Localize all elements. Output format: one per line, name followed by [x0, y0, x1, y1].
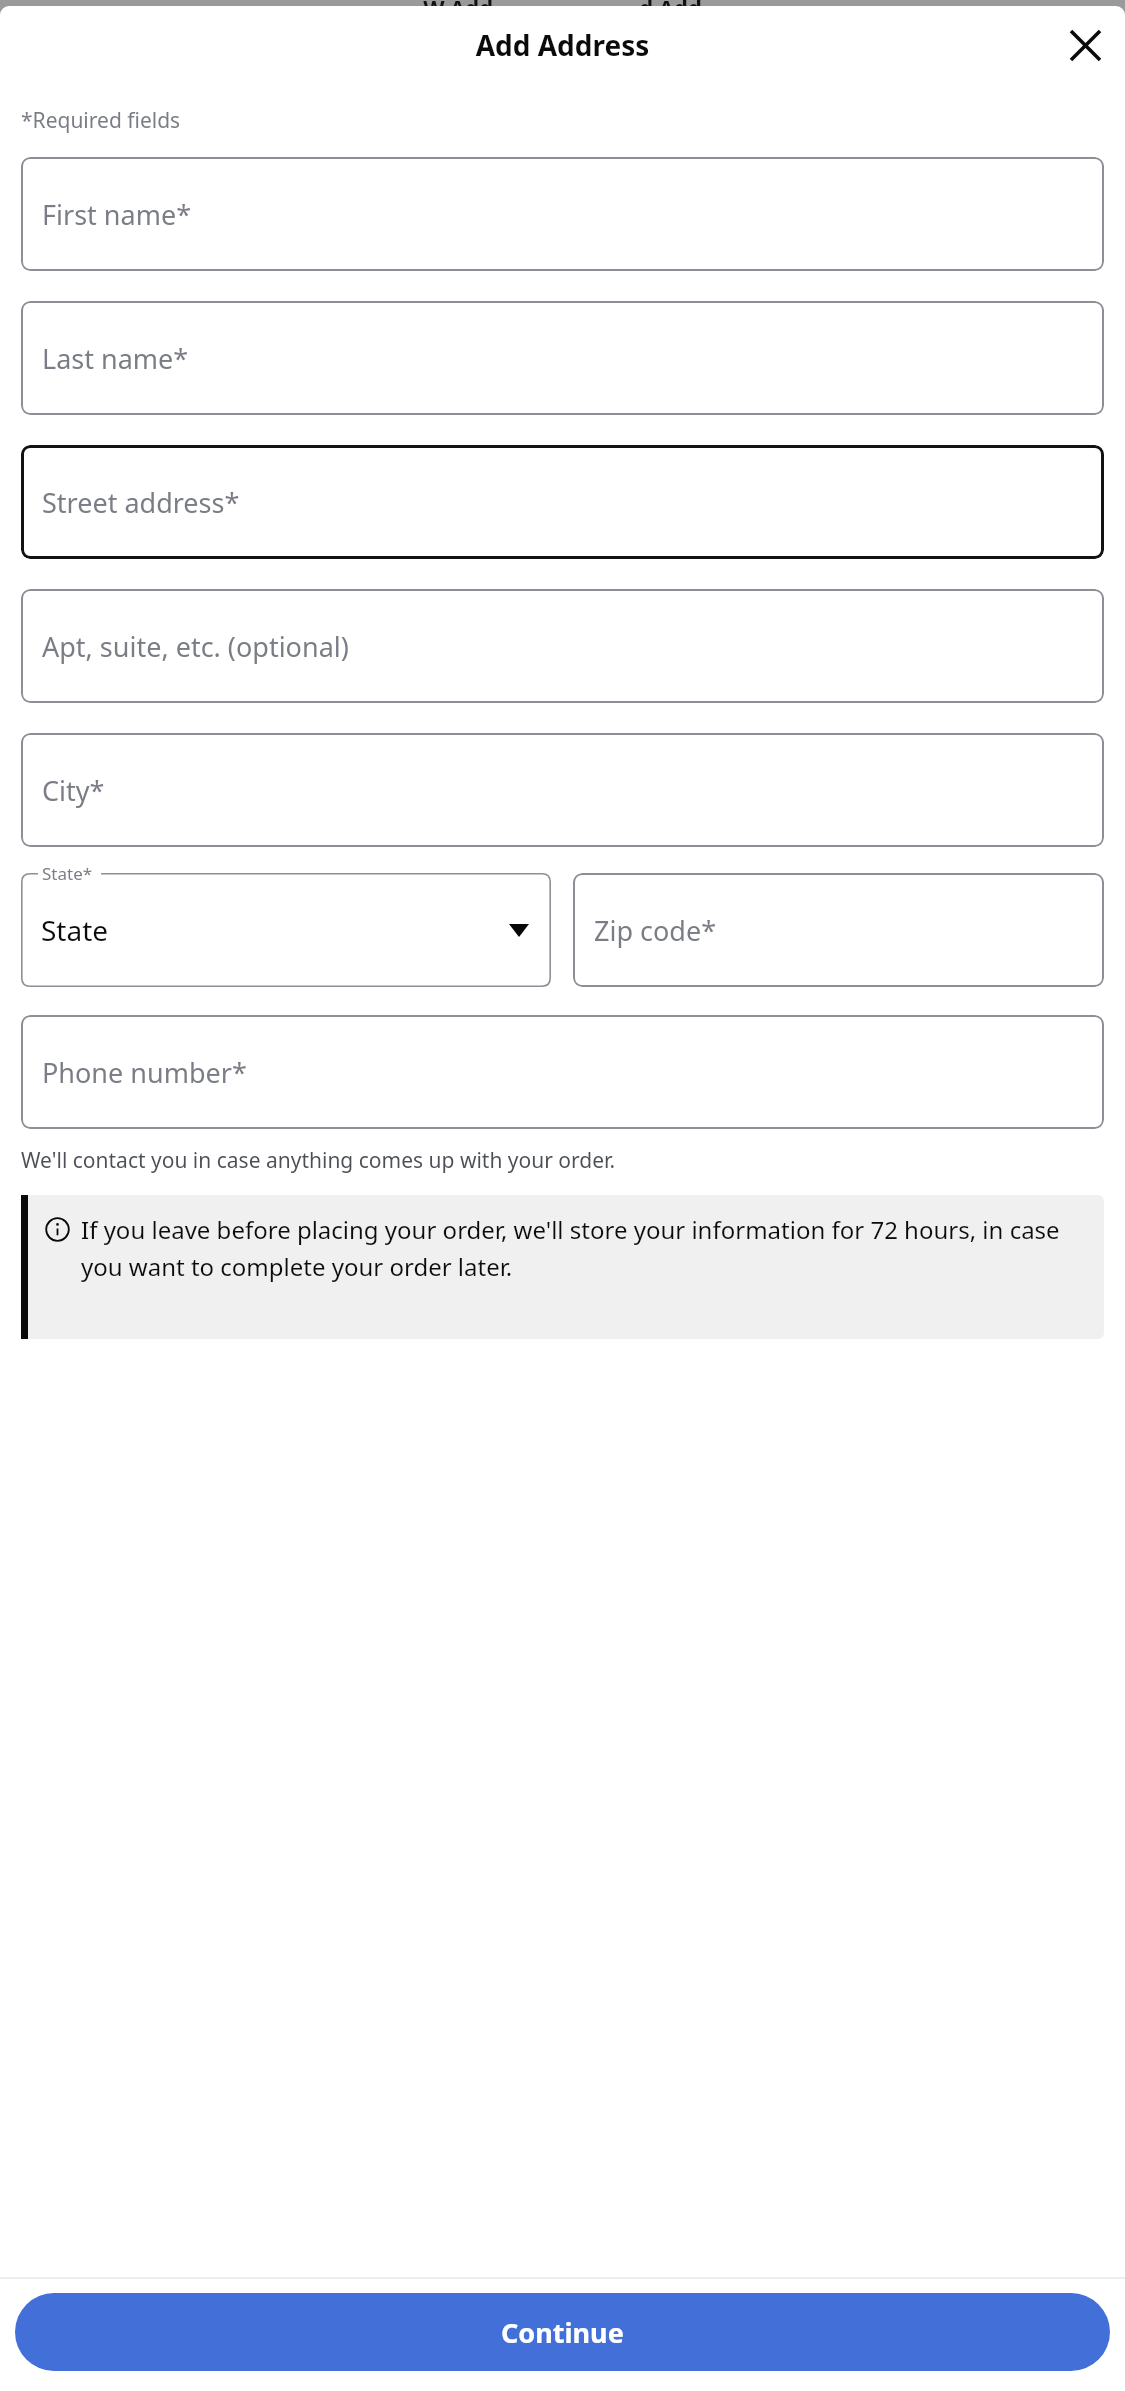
staticText: Continue: [501, 2314, 624, 2351]
button[interactable]: Last name*: [21, 301, 1104, 415]
staticText: Zip code*: [594, 912, 717, 949]
button[interactable]: Zip code*: [573, 873, 1104, 987]
button[interactable]: Close: [1059, 19, 1111, 71]
button[interactable]: Phone number*: [21, 1015, 1104, 1129]
button[interactable]: First name*: [21, 157, 1104, 271]
button[interactable]: Street address*: [21, 445, 1104, 559]
button[interactable]: State: [21, 873, 551, 987]
button[interactable]: City*: [21, 733, 1104, 847]
staticText: City*: [42, 772, 105, 809]
button[interactable]: Apt, suite, etc. (optional): [21, 589, 1104, 703]
staticText: State: [41, 911, 109, 949]
staticText: Phone number*: [42, 1054, 247, 1091]
staticText: State*: [42, 862, 93, 885]
staticText: Last name*: [42, 340, 189, 377]
staticText: W Add···· ···· ·· ··· ·· ····d Add: [0, 0, 1125, 22]
button[interactable]: Continue: [15, 2293, 1110, 2371]
staticText: *Required fields: [21, 106, 181, 135]
staticText: Street address*: [42, 484, 240, 521]
staticText: Apt, suite, etc. (optional): [42, 628, 349, 665]
staticText: We'll contact you in case anything comes…: [21, 1146, 616, 1175]
staticText: If you leave before placing your order, …: [81, 1213, 1086, 1283]
staticText: Add Address: [0, 26, 1125, 64]
staticText: First name*: [42, 196, 192, 233]
